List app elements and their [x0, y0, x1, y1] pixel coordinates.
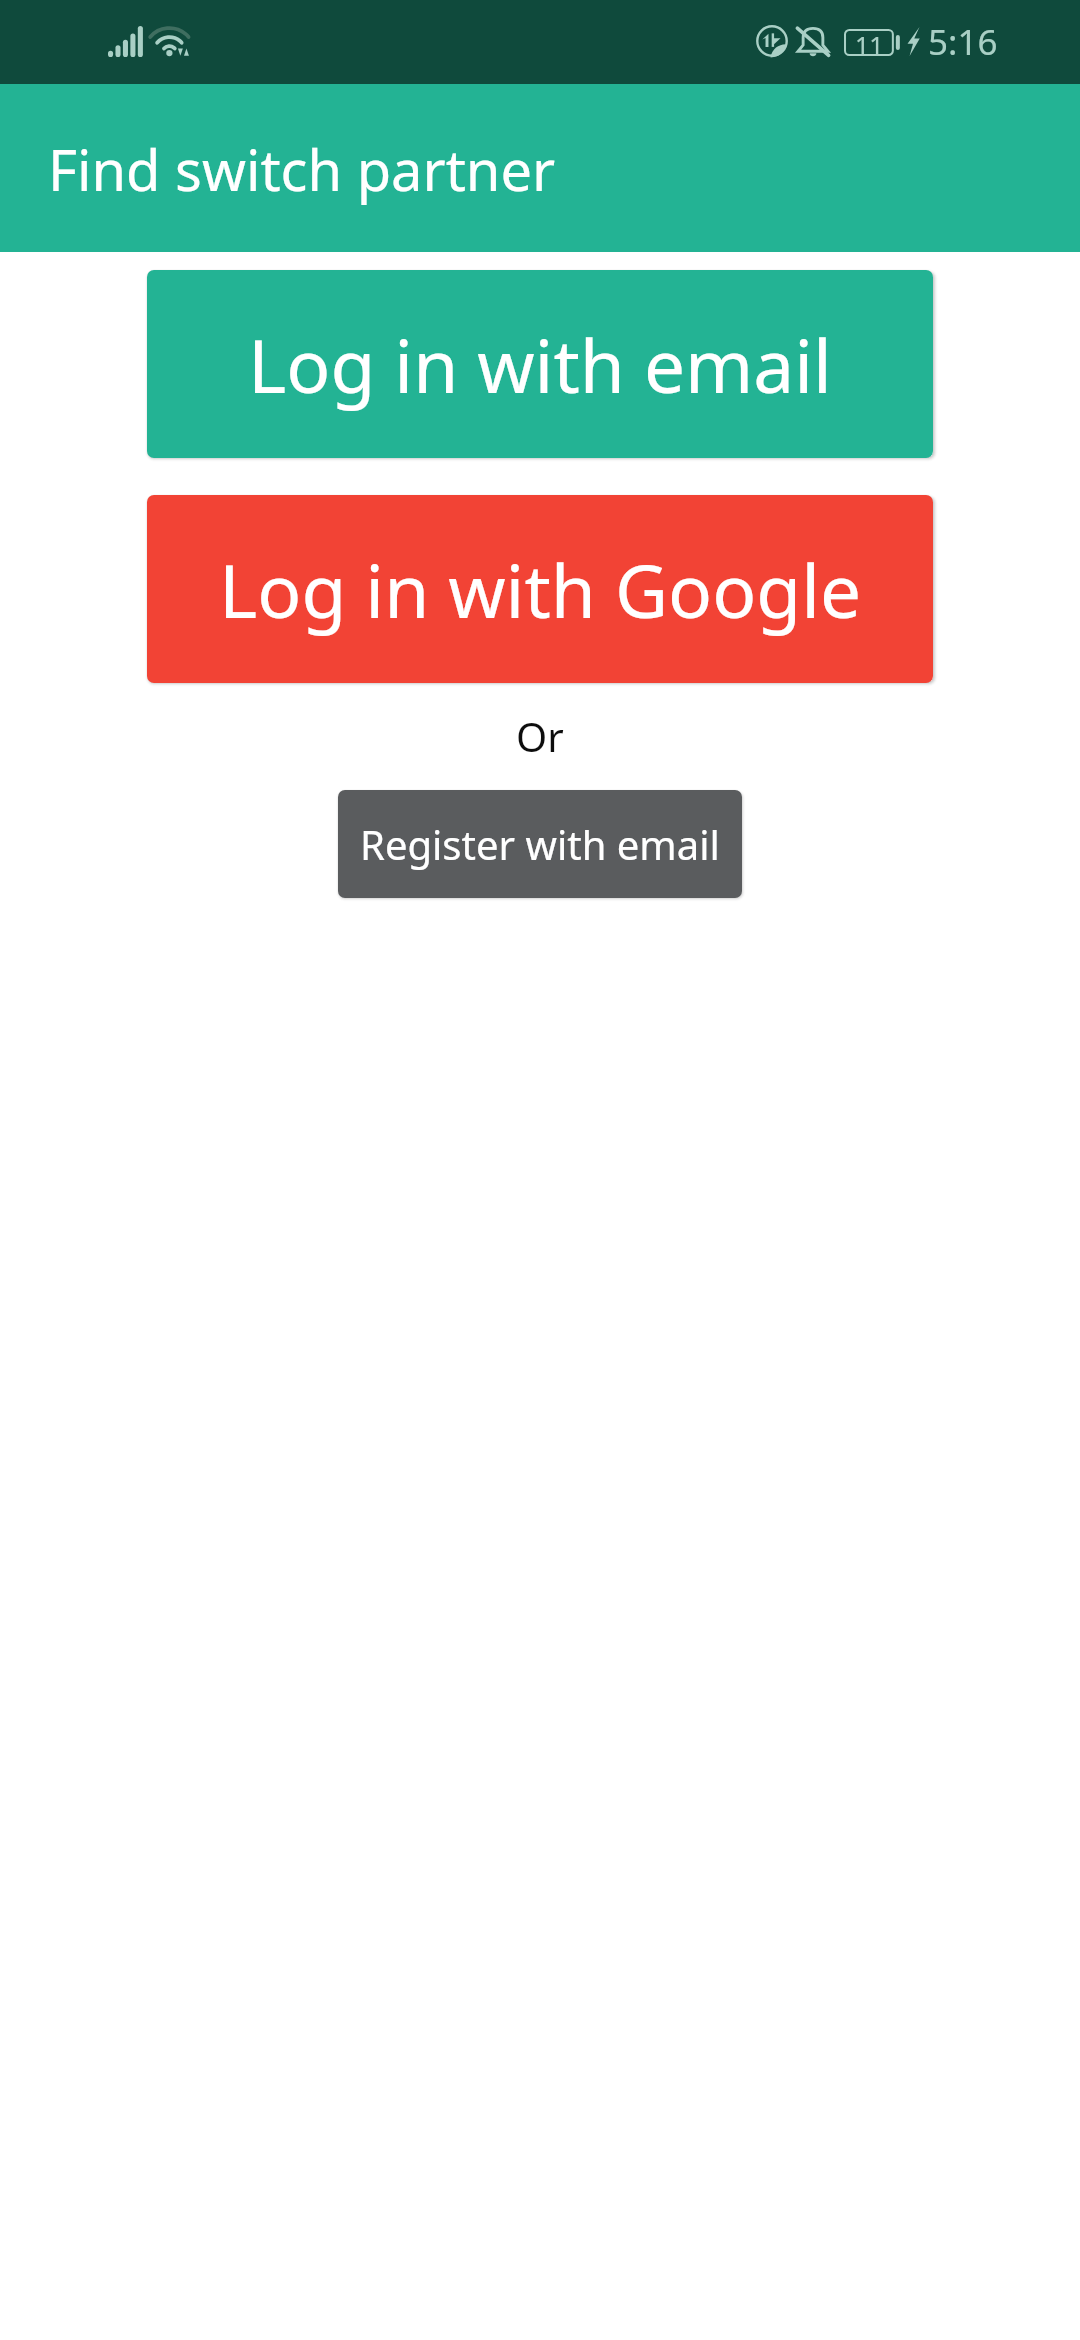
other: Battery saver [756, 25, 788, 57]
staticText: Find switch partner [48, 131, 556, 207]
staticText: Or [0, 709, 1080, 763]
staticText: 5:16 [928, 18, 998, 66]
staticText: 11 [855, 28, 884, 55]
staticText: Log in with email [248, 315, 832, 414]
other: Notifications muted [796, 24, 830, 58]
staticText: Log in with Google [219, 540, 862, 639]
button[interactable]: Log in with Google [147, 495, 933, 683]
button[interactable]: Register with email [338, 790, 742, 898]
staticText: Register with email [360, 817, 720, 871]
button[interactable]: Log in with email [147, 270, 933, 458]
other: Charging [907, 27, 920, 56]
